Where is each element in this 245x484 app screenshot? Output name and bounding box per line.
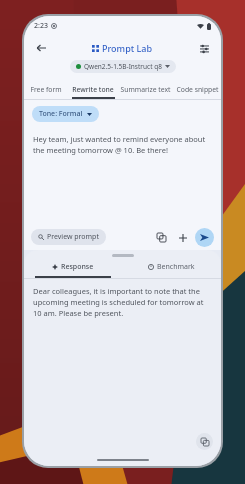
staticText: Rewrite tone (72, 85, 114, 94)
button[interactable]: Copy prompt (153, 229, 170, 246)
button[interactable]: Benchmark (122, 262, 221, 278)
staticText: Hey team, just wanted to remind everyone… (33, 134, 212, 155)
staticText: 2:23 (34, 21, 48, 31)
staticText: Response (61, 262, 94, 272)
staticText: Benchmark (157, 262, 195, 272)
button[interactable]: Preview prompt (31, 229, 106, 245)
button[interactable]: Free form (24, 79, 68, 99)
button[interactable]: Add (174, 229, 191, 246)
button[interactable]: Back (32, 39, 50, 57)
button[interactable]: Response (24, 262, 122, 278)
button[interactable]: Copy response (196, 433, 213, 450)
staticText: Preview prompt (47, 232, 99, 242)
button[interactable]: Summarize text (118, 79, 173, 99)
button[interactable]: Code snippet (173, 79, 221, 99)
staticText: Code snippet (176, 85, 219, 94)
staticText: Tone: Formal (39, 109, 83, 119)
staticText: Summarize text (120, 85, 171, 94)
button[interactable]: Qwen2.5-1.5B-Instruct q8 (70, 60, 176, 73)
staticText: Free form (30, 85, 62, 94)
button[interactable]: Tone: Formal (32, 106, 99, 122)
button[interactable]: Settings (195, 39, 213, 57)
button[interactable]: Send (195, 228, 214, 247)
button[interactable]: Rewrite tone (68, 79, 118, 99)
staticText: Dear colleagues, it is important to note… (33, 286, 212, 318)
staticText: Prompt Lab (102, 42, 153, 54)
staticText: Qwen2.5-1.5B-Instruct q8 (84, 62, 162, 71)
